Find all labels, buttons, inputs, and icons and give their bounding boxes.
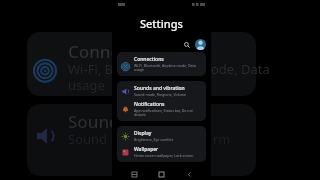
button[interactable]: Notifications xyxy=(117,99,206,119)
staticText: rm xyxy=(213,130,231,148)
button[interactable]: Account xyxy=(195,39,206,50)
button[interactable]: Sounds and vibration xyxy=(117,83,206,99)
staticText: Wi-Fi, Bluetooth, Airplane mode, Data us… xyxy=(134,63,196,72)
staticText: Sounds and vibration xyxy=(134,85,185,92)
staticText: App notifications, Status bar, Do not di… xyxy=(134,108,193,117)
staticText: usage xyxy=(68,76,105,94)
staticText: Wi-Fi, Bl xyxy=(68,60,117,78)
staticText: ode, Data xyxy=(211,60,270,78)
button[interactable]: Back xyxy=(184,169,195,180)
staticText: Sound m xyxy=(68,130,123,148)
button[interactable]: Display xyxy=(117,128,206,144)
button[interactable]: Search xyxy=(181,39,192,50)
staticText: Notifications xyxy=(134,101,165,108)
staticText: Home screen wallpaper, Lock screen xyxy=(134,153,194,158)
staticText: Brightness, Eye comfort xyxy=(134,137,174,142)
button[interactable]: Recents xyxy=(129,169,140,180)
button[interactable]: Home xyxy=(156,169,167,180)
button[interactable]: Wallpaper xyxy=(117,144,206,160)
staticText: Conne xyxy=(68,40,121,63)
staticText: Display xyxy=(134,130,152,137)
staticText: Sound mode, Ringtone, Volume xyxy=(134,92,187,97)
staticText: Sound xyxy=(68,110,120,133)
staticText: Settings xyxy=(140,16,183,31)
button[interactable]: Connections xyxy=(117,54,206,74)
staticText: Wallpaper xyxy=(134,146,159,153)
staticText: Connections xyxy=(134,56,164,63)
